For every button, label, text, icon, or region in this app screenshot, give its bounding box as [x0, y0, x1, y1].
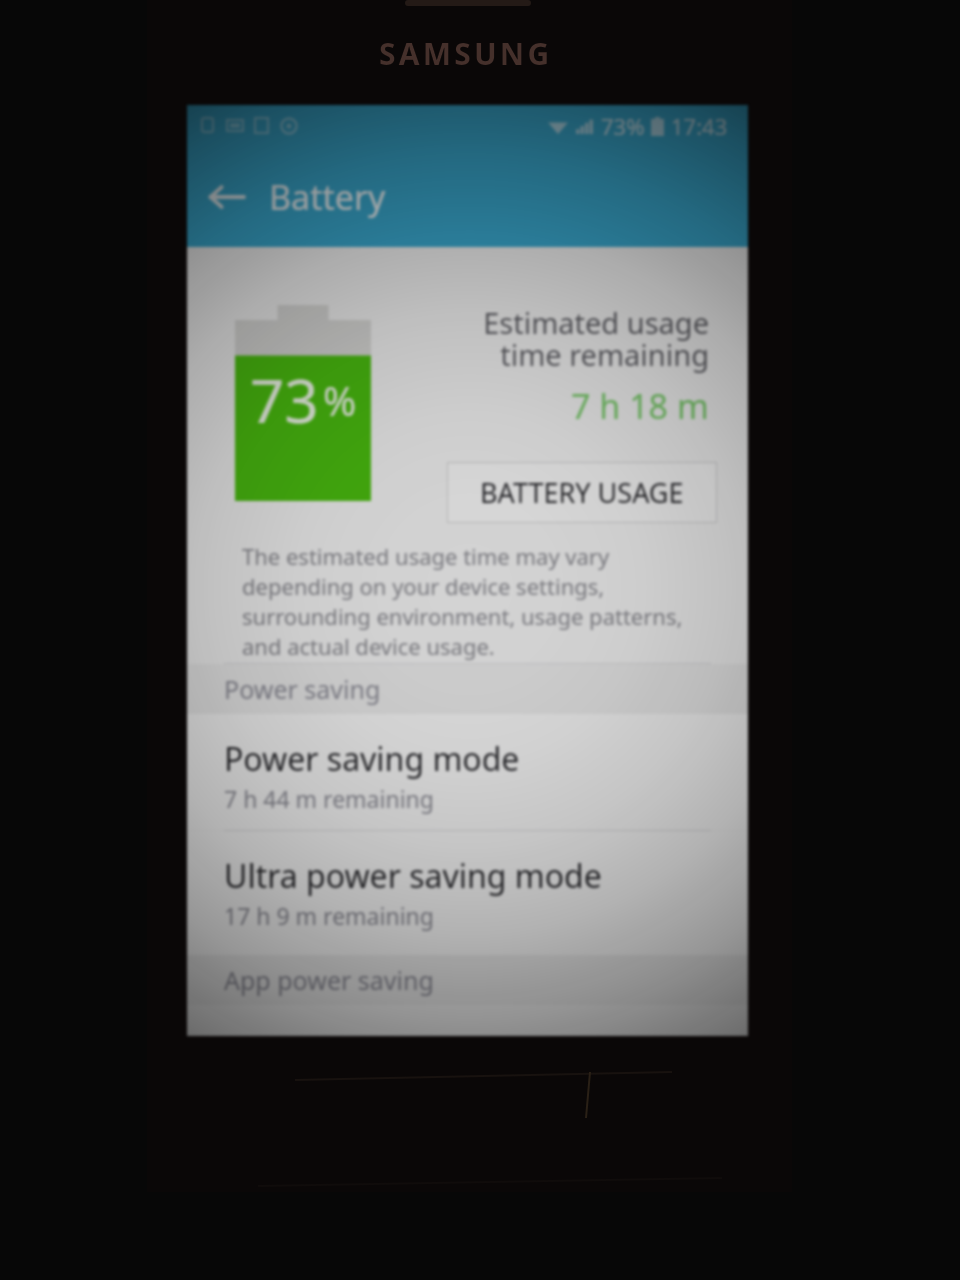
staticText: 17:43: [671, 111, 728, 141]
staticText: 7 h 44 m remaining: [224, 783, 434, 814]
button[interactable]: Back: [199, 170, 253, 224]
staticText: and actual device usage.: [242, 631, 495, 661]
staticText: The estimated usage time may vary: [242, 541, 610, 571]
staticText: 17 h 9 m remaining: [224, 900, 434, 931]
staticText: 7 h 18 m: [571, 383, 709, 429]
button[interactable]: BATTERY USAGE: [447, 462, 717, 523]
staticText: surrounding environment, usage patterns,: [242, 601, 683, 631]
staticText: depending on your device settings,: [242, 571, 605, 601]
button[interactable]: Ultra power saving mode: [187, 831, 748, 955]
staticText: Battery: [269, 174, 386, 220]
button[interactable]: Power saving mode: [187, 714, 748, 830]
staticText: 73: [250, 359, 319, 441]
staticText: 73%: [601, 111, 645, 141]
staticText: Ultra power saving mode: [224, 854, 602, 898]
staticText: BATTERY USAGE: [480, 474, 684, 511]
staticText: App power saving: [224, 963, 434, 997]
staticText: Power saving mode: [224, 737, 520, 781]
staticText: Estimated usage time remaining: [483, 303, 709, 375]
staticText: %: [323, 373, 357, 427]
staticText: Power saving: [224, 672, 381, 706]
staticText: SAMSUNG: [379, 33, 553, 74]
